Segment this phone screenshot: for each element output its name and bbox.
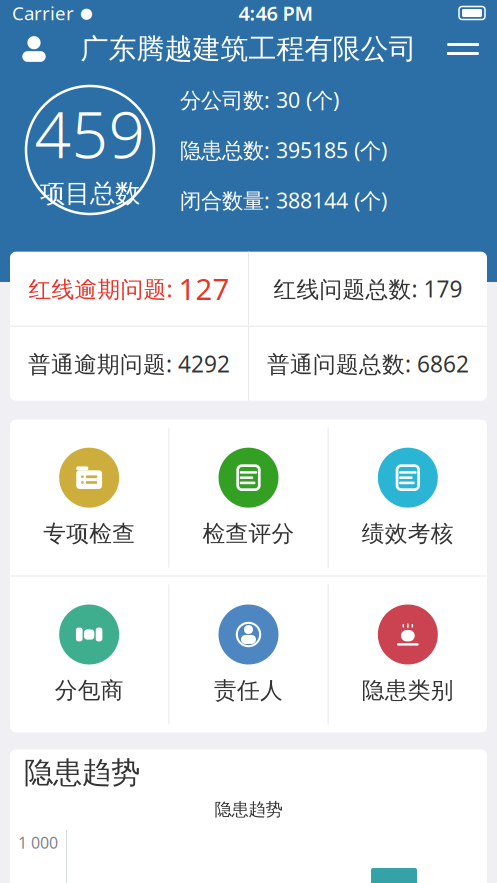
staticText: ●	[80, 5, 93, 21]
button[interactable]: Profile	[6, 27, 62, 71]
staticText: 红线问题总数:	[273, 274, 423, 304]
staticText: 459	[34, 91, 145, 176]
button[interactable]: 绩效考核	[329, 420, 487, 575]
staticText: 隐患类别	[362, 676, 454, 704]
staticText: 闭合数量: 388144 (个)	[180, 186, 387, 214]
staticText: 普通逾期问题:	[28, 349, 178, 379]
staticText: Carrier	[12, 1, 74, 25]
staticText: 广东腾越建筑工程有限公司	[80, 32, 416, 66]
button[interactable]: 责任人	[169, 576, 328, 732]
staticText: 责任人	[214, 676, 283, 704]
staticText: 6862	[417, 349, 469, 379]
button[interactable]: 分包商	[10, 576, 168, 732]
button[interactable]: Switch company	[435, 27, 491, 71]
staticText: 检查评分	[202, 520, 294, 547]
staticText: 179	[423, 274, 462, 304]
staticText: 普通问题总数:	[267, 349, 417, 379]
staticText: 隐患趋势	[24, 755, 140, 791]
staticText: 红线逾期问题:	[28, 274, 178, 304]
staticText: 专项检查	[43, 520, 135, 547]
staticText: 127	[178, 269, 229, 308]
button[interactable]: 专项检查	[10, 420, 168, 575]
button[interactable]: 检查评分	[169, 420, 328, 575]
staticText: 4292	[178, 349, 230, 379]
button[interactable]: 隐患类别	[329, 576, 487, 732]
staticText: 项目总数	[40, 178, 140, 209]
staticText: 分包商	[55, 676, 124, 704]
staticText: 分公司数: 30 (个)	[180, 85, 339, 114]
staticText: 1 000	[18, 832, 58, 853]
staticText: 隐患总数: 395185 (个)	[180, 136, 387, 164]
staticText: 绩效考核	[362, 520, 454, 547]
staticText: 隐患趋势	[214, 799, 282, 820]
staticText: 4:46 PM	[238, 0, 313, 26]
